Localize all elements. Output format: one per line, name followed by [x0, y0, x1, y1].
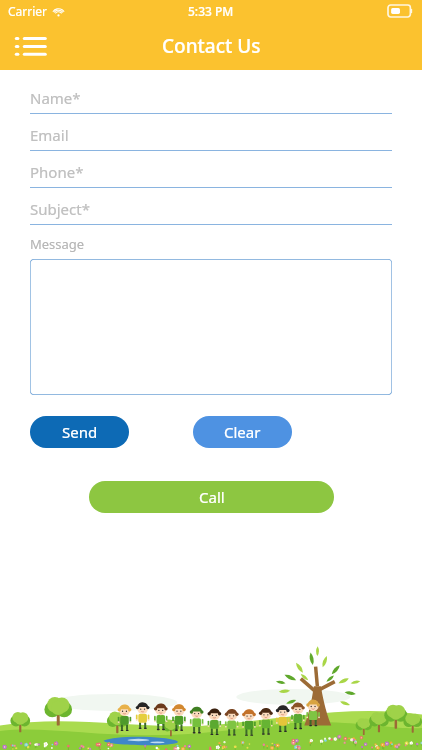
button[interactable]: Call	[89, 481, 334, 513]
staticText: 5:33 PM	[188, 3, 234, 19]
button[interactable]: Name*	[30, 83, 392, 120]
button[interactable]: Phone*	[30, 157, 392, 194]
button[interactable]: Subject*	[30, 194, 392, 231]
staticText: Send	[62, 422, 98, 442]
staticText: Clear	[224, 422, 261, 442]
staticText: Carrier	[8, 3, 48, 19]
staticText: Name*	[30, 88, 81, 108]
staticText: Contact Us	[162, 33, 261, 59]
button[interactable]: Clear	[193, 416, 292, 448]
button[interactable]: Send	[30, 416, 129, 448]
button[interactable]	[30, 259, 392, 395]
staticText: Phone*	[30, 162, 84, 182]
button[interactable]: Email	[30, 120, 392, 157]
staticText: Email	[30, 125, 69, 145]
staticText: Call	[199, 487, 225, 507]
staticText: Subject*	[30, 199, 90, 219]
staticText: Message	[30, 235, 85, 253]
button[interactable]: Menu	[12, 30, 52, 62]
